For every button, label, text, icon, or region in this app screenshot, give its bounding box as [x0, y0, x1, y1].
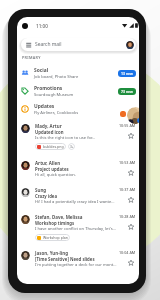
button[interactable]: Workshop plan: [37, 235, 68, 240]
button[interactable]: Star: [128, 197, 134, 203]
staticText: Jason, Yun-ling: [35, 250, 69, 256]
staticText: 73 new: [121, 89, 133, 94]
staticText: Sung: [35, 187, 47, 193]
button[interactable]: Updates: [17, 100, 139, 118]
staticText: 10:55 AM: [119, 123, 136, 128]
button[interactable]: bubbles.png: [37, 144, 64, 149]
staticText: Mady, Artur: [35, 123, 62, 129]
staticText: Updated icon: [35, 129, 64, 135]
staticText: Job board, Photo Share: [34, 74, 79, 80]
staticText: 10:04 AM: [119, 250, 136, 255]
button[interactable]: Star: [128, 133, 134, 139]
button[interactable]: Sung: [17, 183, 139, 210]
staticText: Promotions: [34, 85, 63, 92]
button[interactable]: 73 new: [121, 89, 133, 94]
button[interactable]: Stefan, Dave, Melissa: [17, 210, 139, 246]
staticText: PRIMARY: [22, 55, 41, 60]
button[interactable]: Jason, Yun-ling: [17, 246, 139, 273]
staticText: Hi! I had a potentially crazy idea I wan…: [35, 199, 117, 205]
button[interactable]: Open navigation menu: [21, 38, 136, 51]
staticText: 10:37 AM: [119, 187, 136, 192]
staticText: Search mail: [35, 41, 62, 48]
staticText: Is this the right icon to use for...: [35, 135, 96, 141]
button[interactable]: Promotions: [17, 82, 139, 100]
staticText: Stefan, Dave, Melissa: [35, 214, 83, 220]
staticText: I'm putting together a deck for our mont…: [35, 262, 117, 268]
button[interactable]: Mady, Artur: [17, 119, 139, 156]
staticText: Workshop plan: [43, 235, 68, 240]
staticText: Sourdough Museum: [34, 92, 74, 98]
staticText: Social: [34, 67, 49, 74]
staticText: [Time Sensitive] Need slides: [35, 256, 95, 262]
staticText: bubbles.png: [43, 144, 64, 149]
button[interactable]: Star: [128, 260, 134, 266]
staticText: 3+: [70, 145, 74, 149]
staticText: Hi all, quick question.: [35, 172, 76, 178]
staticText: Fly Airlines, Cookbooks: [34, 110, 79, 116]
button[interactable]: 3+: [68, 143, 75, 150]
staticText: Crazy idea: [35, 193, 57, 199]
staticText: Artur, Allen: [35, 160, 61, 166]
button[interactable]: Artur, Allen: [17, 156, 139, 183]
button[interactable]: Account: [126, 41, 134, 49]
staticText: 11:00: [36, 23, 48, 29]
staticText: Workshop timings: [35, 220, 75, 226]
button[interactable]: 13 new: [121, 71, 133, 76]
staticText: Project updates: [35, 166, 69, 172]
staticText: Updates: [34, 103, 55, 110]
button[interactable]: Social: [17, 64, 139, 82]
other: Open navigation menu: [26, 42, 31, 47]
button[interactable]: Star: [128, 224, 134, 230]
staticText: 10:53 AM: [119, 160, 136, 165]
staticText: 13 new: [121, 71, 133, 76]
staticText: I have another conflict on Thursday, let…: [35, 226, 117, 232]
staticText: 10:28 AM: [119, 214, 136, 219]
button[interactable]: Star: [128, 170, 134, 176]
